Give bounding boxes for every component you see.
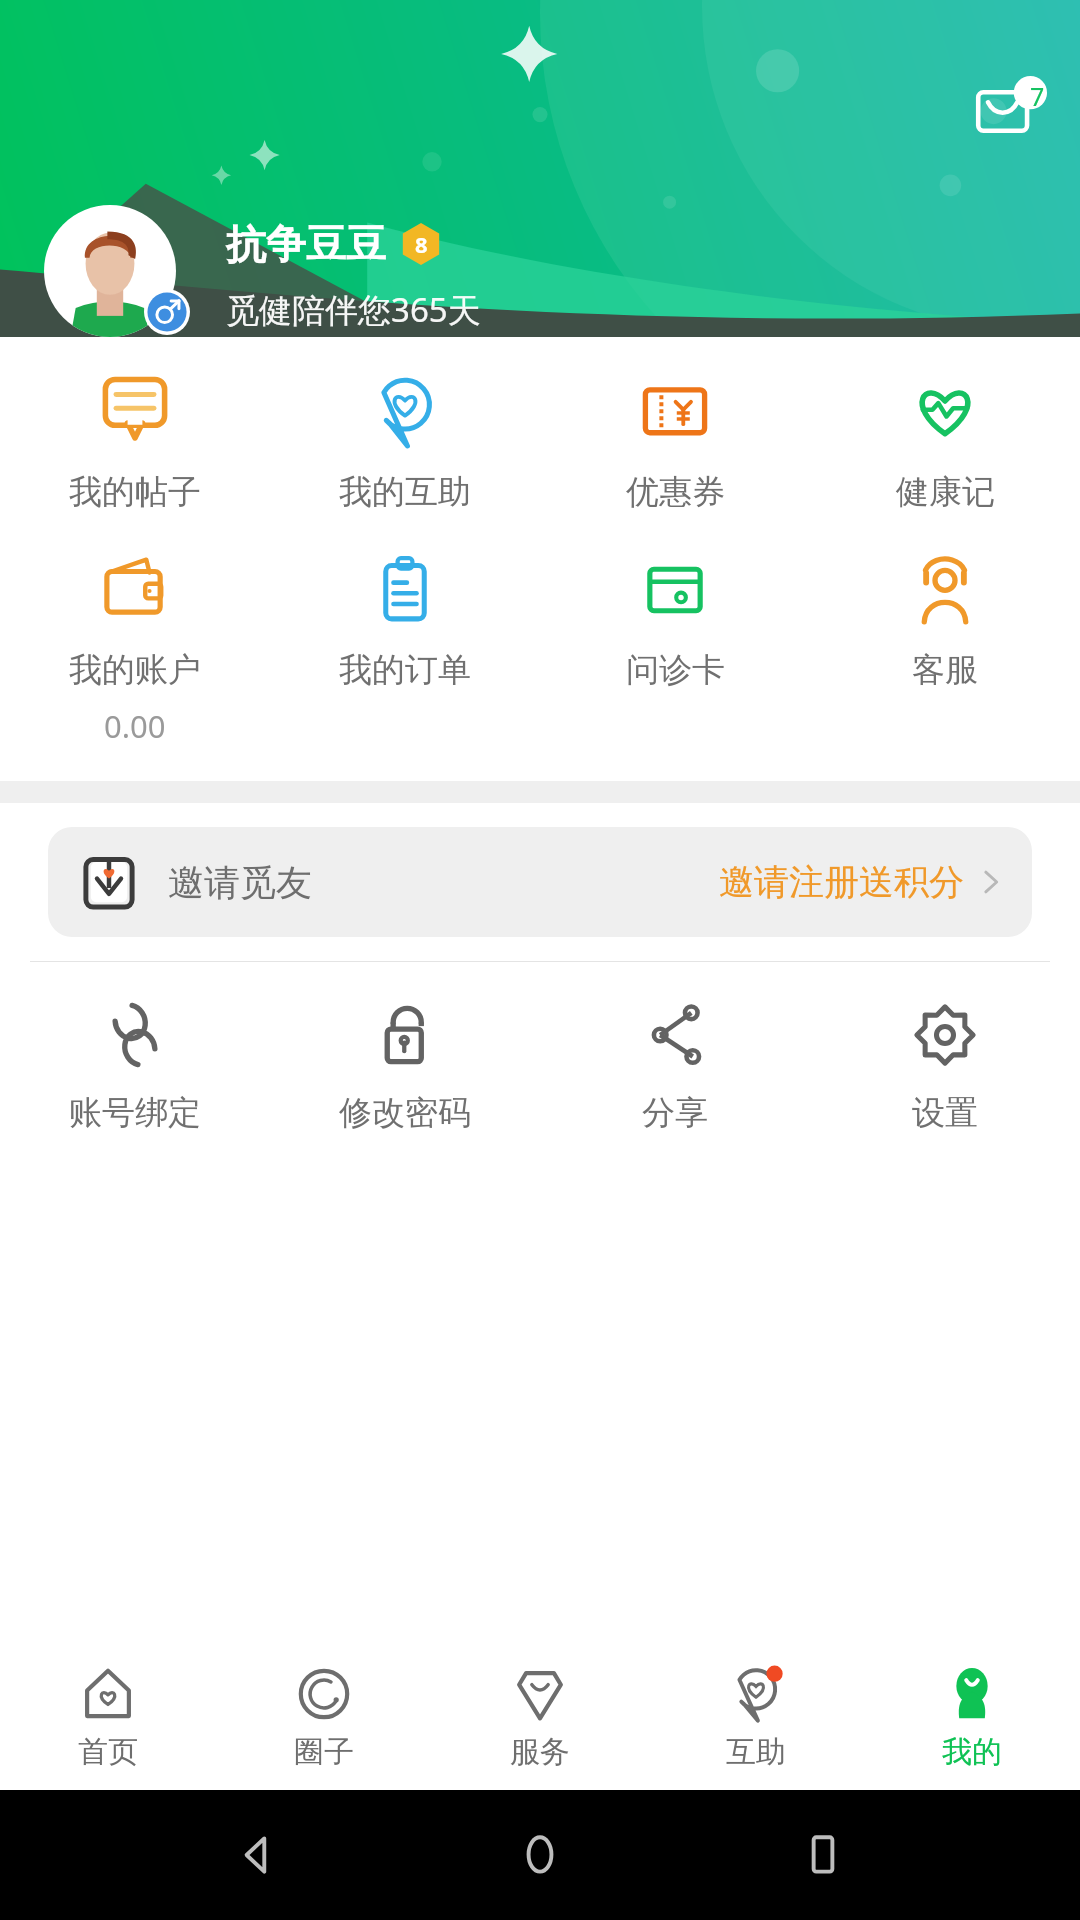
staticText: 客服 — [912, 649, 978, 691]
button[interactable]: 邀请觅友 — [48, 827, 1032, 937]
button[interactable]: 圈子 — [216, 1645, 432, 1790]
button[interactable]: Home — [514, 1829, 566, 1881]
button[interactable]: 问诊卡 — [540, 553, 810, 691]
staticText: 服务 — [510, 1733, 570, 1771]
button[interactable]: 修改密码 — [270, 998, 540, 1134]
button[interactable]: 健康记 — [810, 375, 1080, 513]
staticText: 分享 — [642, 1092, 708, 1134]
staticText: 设置 — [912, 1092, 978, 1134]
button[interactable]: Recents — [797, 1829, 849, 1881]
button[interactable]: Messages — [976, 76, 1050, 150]
button[interactable]: Back — [231, 1829, 283, 1881]
staticText: 7 — [1030, 79, 1045, 113]
staticText: 修改密码 — [339, 1092, 471, 1134]
button[interactable]: 服务 — [432, 1645, 648, 1790]
button[interactable]: 客服 — [810, 553, 1080, 691]
button[interactable]: 我的账户 — [0, 553, 270, 747]
staticText: 0.00 — [104, 705, 166, 747]
staticText: 邀请觅友 — [168, 860, 312, 905]
button[interactable]: 互助 — [648, 1645, 864, 1790]
staticText: 首页 — [78, 1733, 138, 1771]
button[interactable]: 我的帖子 — [0, 375, 270, 513]
staticText: 圈子 — [294, 1733, 354, 1771]
staticText: 我的 — [942, 1733, 1002, 1771]
button[interactable]: 账号绑定 — [0, 998, 270, 1134]
staticText: 8 — [415, 229, 428, 259]
staticText: 我的帖子 — [69, 471, 201, 513]
staticText: 邀请注册送积分 — [719, 860, 964, 904]
button[interactable]: 分享 — [540, 998, 810, 1134]
button[interactable]: 设置 — [810, 998, 1080, 1134]
button[interactable]: 优惠券 — [540, 375, 810, 513]
button[interactable]: 首页 — [0, 1645, 216, 1790]
staticText: 抗争豆豆 — [226, 219, 386, 269]
staticText: 觅健陪伴您365天 — [226, 287, 481, 332]
staticText: 账号绑定 — [69, 1092, 201, 1134]
button[interactable] — [44, 205, 194, 337]
button[interactable]: 我的 — [864, 1645, 1080, 1790]
button[interactable]: 我的互助 — [270, 375, 540, 513]
staticText: 问诊卡 — [626, 649, 725, 691]
staticText: 我的订单 — [339, 649, 471, 691]
staticText: 我的账户 — [69, 649, 201, 691]
staticText: 优惠券 — [626, 471, 725, 513]
button[interactable]: 我的订单 — [270, 553, 540, 691]
staticText: 我的互助 — [339, 471, 471, 513]
staticText: 健康记 — [896, 471, 995, 513]
staticText: 互助 — [726, 1733, 786, 1771]
